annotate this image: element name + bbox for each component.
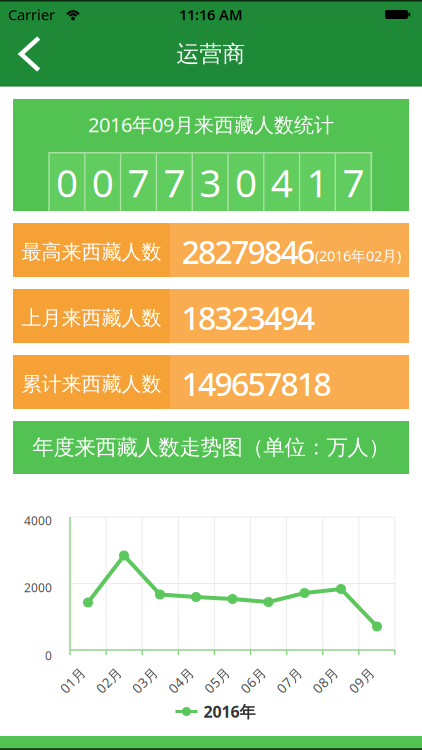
- staticText: 0: [235, 157, 257, 208]
- staticText: 7: [342, 157, 364, 208]
- staticText: 累计来西藏人数: [21, 372, 161, 396]
- staticText: 2016年09月来西藏人数统计: [88, 111, 334, 138]
- staticText: 年度来西藏人数走势图（单位：万人）: [32, 434, 389, 461]
- staticText: 149657818: [181, 362, 331, 405]
- staticText: 2000: [24, 579, 52, 595]
- staticText: 7: [163, 157, 185, 208]
- staticText: 05月: [202, 672, 231, 689]
- staticText: 28279846: [181, 230, 315, 273]
- staticText: 2016年: [203, 701, 255, 722]
- staticText: 03月: [130, 672, 159, 689]
- staticText: 运营商: [176, 40, 245, 68]
- staticText: 7: [128, 157, 150, 208]
- staticText: 18323494: [181, 296, 315, 339]
- staticText: 0: [56, 157, 78, 208]
- staticText: 最高来西藏人数: [21, 240, 161, 264]
- staticText: 3: [199, 157, 221, 208]
- staticText: Carrier: [8, 5, 55, 24]
- staticText: 07月: [275, 672, 304, 689]
- staticText: 1: [307, 157, 329, 208]
- staticText: 04月: [166, 672, 195, 689]
- button[interactable]: 2016年 series: [175, 701, 255, 722]
- staticText: 06月: [238, 672, 267, 689]
- button[interactable]: Back: [12, 33, 56, 74]
- staticText: 0: [45, 647, 52, 663]
- staticText: 4000: [24, 512, 52, 528]
- staticText: 11:16 AM: [179, 5, 243, 24]
- staticText: 上月来西藏人数: [21, 306, 161, 330]
- staticText: 01月: [58, 672, 87, 689]
- staticText: 09月: [347, 672, 376, 689]
- staticText: (2016年02月): [315, 246, 401, 265]
- staticText: 4: [271, 157, 293, 208]
- staticText: 02月: [94, 672, 123, 689]
- staticText: 0: [92, 157, 114, 208]
- staticText: 08月: [311, 672, 340, 689]
